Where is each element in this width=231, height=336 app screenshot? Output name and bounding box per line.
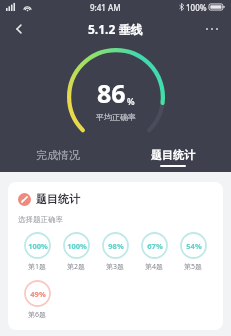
button[interactable]: 完成情况 [0, 142, 115, 172]
button[interactable]: 49% [18, 280, 57, 320]
staticText: 100% [186, 2, 207, 13]
staticText: 100% [28, 241, 48, 251]
staticText: % [127, 95, 135, 107]
staticText: 第2题 [67, 262, 86, 272]
button[interactable]: 67% [135, 232, 174, 272]
staticText: 86 [97, 76, 126, 110]
staticText: 选择题正确率 [18, 215, 63, 224]
staticText: 第1题 [28, 262, 47, 272]
staticText: 完成情况 [36, 148, 80, 162]
button[interactable]: 100% [57, 232, 96, 272]
staticText: 67% [147, 241, 163, 251]
button[interactable]: More options [199, 16, 225, 42]
staticText: 题目统计 [151, 148, 195, 162]
staticText: 98% [108, 241, 124, 251]
staticText: 第5题 [184, 262, 203, 272]
button[interactable]: 100% [18, 232, 57, 272]
staticText: 平均正确率 [96, 112, 136, 122]
staticText: 9:41 AM [90, 2, 121, 13]
staticText: 100% [67, 241, 87, 251]
button[interactable]: 54% [174, 232, 213, 272]
staticText: 第4题 [145, 262, 164, 272]
button[interactable]: Back [6, 16, 32, 42]
button[interactable]: 题目统计 [115, 142, 231, 172]
button[interactable]: 98% [96, 232, 135, 272]
staticText: 54% [186, 241, 202, 251]
staticText: 第6题 [28, 310, 47, 320]
staticText: 题目统计 [36, 192, 80, 206]
staticText: 49% [30, 289, 46, 299]
staticText: 5.1.2 垂线 [88, 21, 143, 37]
staticText: 第3题 [106, 262, 125, 272]
